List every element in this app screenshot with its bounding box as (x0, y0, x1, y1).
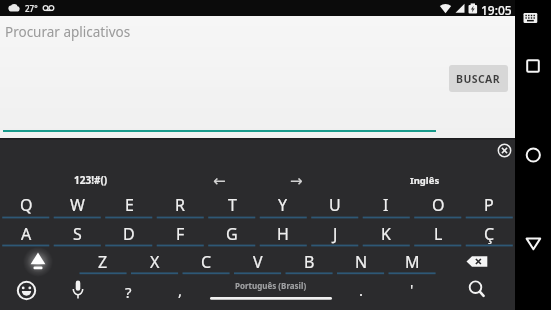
staticText: M (405, 251, 420, 273)
staticText: H (277, 223, 289, 245)
staticText: Português (Brasil) (235, 280, 307, 291)
staticText: → (290, 172, 303, 189)
staticText: BUSCAR (456, 72, 501, 86)
button[interactable] (492, 138, 515, 163)
button[interactable]: V (232, 249, 284, 275)
staticText: R (175, 194, 185, 216)
staticText: A (21, 223, 32, 245)
button[interactable]: D (103, 221, 155, 247)
button[interactable]: T (206, 192, 258, 218)
button[interactable]: . (335, 277, 387, 303)
staticText: X (150, 251, 160, 273)
button[interactable]: N (335, 249, 387, 275)
button[interactable]: Inglês (400, 170, 450, 190)
button[interactable] (522, 233, 544, 255)
staticText: , (178, 280, 183, 300)
staticText: D (123, 223, 135, 245)
button[interactable]: 123!#() (61, 170, 121, 190)
button[interactable]: , (154, 277, 206, 303)
button[interactable]: J (309, 221, 361, 247)
button[interactable] (449, 276, 515, 310)
staticText: T (228, 194, 237, 216)
button[interactable]: ← (204, 170, 234, 190)
button[interactable]: W (51, 192, 103, 218)
staticText: O (432, 194, 445, 216)
button[interactable]: C (180, 249, 232, 275)
button[interactable]: BUSCAR (449, 65, 508, 92)
staticText: F (176, 223, 185, 245)
button[interactable]: Y (257, 192, 309, 218)
button[interactable]: E (103, 192, 155, 218)
button[interactable]: U (309, 192, 361, 218)
button[interactable]: ' (386, 276, 438, 302)
button[interactable]: P (463, 192, 515, 218)
staticText: Procurar aplicativos (5, 23, 131, 41)
button[interactable]: O (412, 192, 464, 218)
button[interactable]: ? (102, 279, 154, 305)
staticText: Q (20, 194, 33, 216)
staticText: Y (278, 194, 288, 216)
staticText: Inglês (410, 174, 440, 187)
button[interactable]: I (360, 192, 412, 218)
button[interactable]: Q (0, 192, 52, 218)
staticText: V (253, 251, 263, 273)
button[interactable] (206, 276, 336, 310)
staticText: . (359, 280, 364, 300)
button[interactable]: R (154, 192, 206, 218)
staticText: B (304, 251, 315, 273)
staticText: J (333, 223, 338, 245)
staticText: Z (98, 251, 108, 273)
staticText: Ç (484, 223, 495, 245)
button[interactable]: M (386, 249, 438, 275)
button[interactable] (0, 248, 77, 275)
staticText: G (226, 223, 238, 245)
button[interactable]: S (51, 221, 103, 247)
button[interactable]: K (360, 221, 412, 247)
staticText: 27° (25, 3, 38, 14)
staticText: N (355, 251, 368, 273)
button[interactable] (522, 144, 544, 166)
button[interactable] (521, 10, 541, 26)
button[interactable] (439, 248, 515, 275)
staticText: C (201, 251, 212, 273)
staticText: S (73, 223, 82, 245)
staticText: ? (125, 282, 132, 302)
button[interactable]: Ç (463, 221, 515, 247)
button[interactable]: A (0, 221, 52, 247)
staticText: L (434, 223, 443, 245)
button[interactable]: B (283, 249, 335, 275)
button[interactable]: → (281, 170, 311, 190)
button[interactable]: X (129, 249, 181, 275)
button[interactable]: G (206, 221, 258, 247)
staticText: 123!#() (74, 173, 108, 187)
staticText: E (125, 194, 134, 216)
staticText: I (383, 194, 389, 216)
button[interactable] (0, 276, 52, 310)
button[interactable] (522, 55, 544, 77)
button[interactable]: L (412, 221, 464, 247)
staticText: 19:05 (481, 2, 512, 18)
staticText: ' (410, 279, 414, 299)
button[interactable] (52, 276, 104, 310)
button[interactable]: Z (77, 249, 129, 275)
staticText: K (381, 223, 391, 245)
button[interactable]: H (257, 221, 309, 247)
staticText: W (70, 194, 85, 216)
staticText: ← (213, 172, 226, 189)
staticText: P (484, 194, 494, 216)
staticText: U (329, 194, 341, 216)
button[interactable]: Português (Brasil) (211, 278, 331, 292)
button[interactable]: F (154, 221, 206, 247)
